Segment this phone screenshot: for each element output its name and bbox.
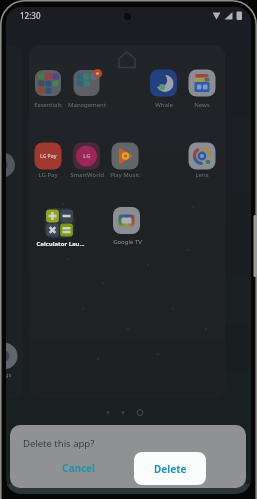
staticText: Play Music bbox=[110, 171, 140, 179]
staticText: News bbox=[194, 101, 210, 109]
button[interactable] bbox=[44, 207, 76, 253]
button[interactable]: Delete bbox=[134, 452, 206, 485]
staticText: 12:30 bbox=[20, 10, 41, 21]
staticText: LG bbox=[83, 152, 91, 160]
staticText: Lens bbox=[195, 171, 209, 179]
staticText: ngs bbox=[6, 371, 12, 379]
staticText: SmartWorld bbox=[70, 171, 104, 179]
button[interactable] bbox=[109, 142, 141, 184]
button[interactable] bbox=[186, 69, 218, 111]
button[interactable] bbox=[186, 142, 218, 184]
staticText: Management bbox=[68, 101, 106, 109]
staticText: Essentials bbox=[34, 101, 62, 109]
button[interactable] bbox=[32, 142, 64, 184]
staticText: Whale bbox=[155, 101, 173, 109]
button[interactable]: Cancel bbox=[49, 454, 109, 481]
staticText: Cancel bbox=[62, 461, 96, 475]
staticText: Delete bbox=[154, 462, 187, 476]
button[interactable] bbox=[110, 207, 143, 249]
staticText: Calculator Lau... bbox=[36, 240, 85, 248]
button[interactable] bbox=[148, 69, 180, 111]
staticText: Delete this app? bbox=[23, 437, 95, 450]
staticText: LG Pay bbox=[40, 153, 57, 160]
staticText: LG Pay bbox=[38, 171, 58, 179]
button[interactable] bbox=[71, 69, 103, 111]
button[interactable] bbox=[71, 142, 103, 184]
button[interactable] bbox=[32, 69, 64, 111]
staticText: Google TV bbox=[113, 238, 142, 246]
